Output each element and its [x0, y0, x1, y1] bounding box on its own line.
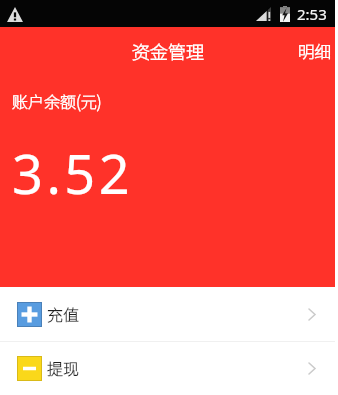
- other: Top up: [17, 302, 42, 327]
- staticText: 充值: [47, 302, 80, 325]
- staticText: 3.52: [12, 136, 134, 210]
- staticText: 2:53: [297, 4, 327, 24]
- button[interactable]: 账户余额(元): [0, 75, 335, 287]
- button[interactable]: Top up: [0, 287, 335, 341]
- staticText: 资金管理: [132, 38, 204, 64]
- button[interactable]: Withdraw: [0, 342, 335, 395]
- other: Withdraw: [17, 356, 42, 381]
- button[interactable]: 明细: [286, 27, 335, 75]
- staticText: 明细: [298, 39, 331, 63]
- staticText: 提现: [47, 356, 80, 379]
- staticText: 账户余额(元): [12, 89, 102, 112]
